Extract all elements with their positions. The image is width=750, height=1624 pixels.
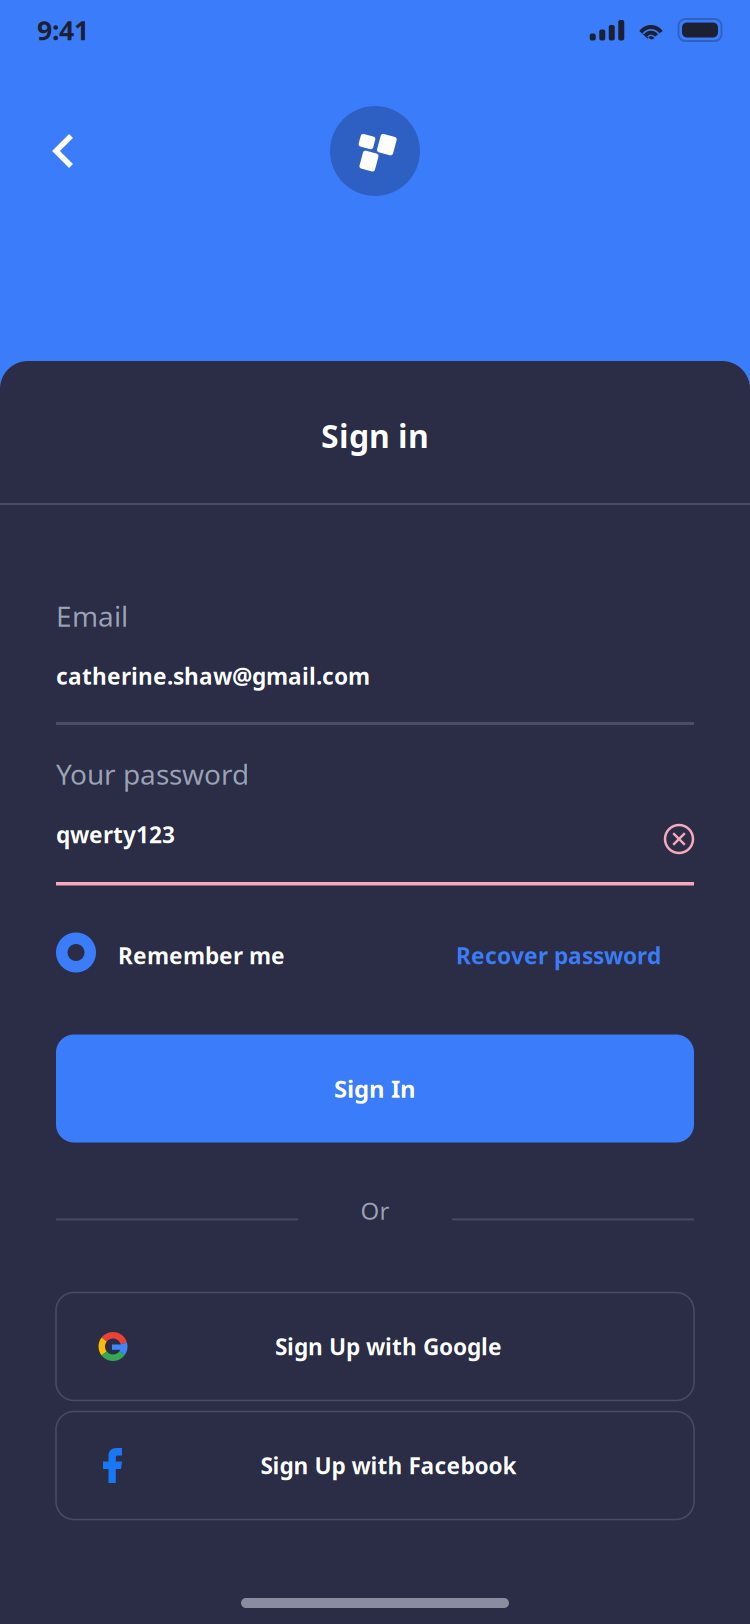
button[interactable]: Sign Up with Facebook bbox=[56, 1411, 694, 1519]
staticText: Remember me bbox=[118, 940, 285, 970]
button[interactable]: Clear password bbox=[664, 824, 694, 854]
staticText: catherine.shaw@gmail.com bbox=[56, 661, 370, 691]
staticText: Sign in bbox=[321, 414, 429, 457]
staticText: Sign Up with Facebook bbox=[260, 1450, 516, 1480]
staticText: Email bbox=[56, 597, 128, 635]
button[interactable]: Back bbox=[34, 115, 94, 187]
button[interactable]: Sign Up with Google bbox=[56, 1292, 694, 1400]
staticText: qwerty123 bbox=[56, 819, 175, 849]
staticText: Recover password bbox=[456, 940, 661, 970]
staticText: Or bbox=[360, 1194, 389, 1226]
staticText: Sign In bbox=[334, 1073, 416, 1104]
button[interactable]: Recover password bbox=[456, 934, 694, 970]
staticText: 9:41 bbox=[37, 12, 89, 48]
button[interactable]: Sign In bbox=[56, 1034, 694, 1142]
staticText: Sign Up with Google bbox=[275, 1331, 502, 1361]
staticText: Your password bbox=[56, 755, 249, 793]
button[interactable]: Remember me bbox=[56, 932, 285, 972]
